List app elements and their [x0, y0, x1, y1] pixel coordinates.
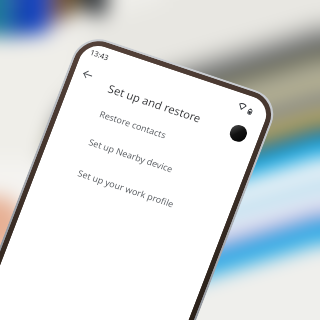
staticText: Set up your work profile — [73, 135, 180, 241]
staticText: Set up and restore — [102, 51, 208, 155]
staticText: 13:43 — [86, 41, 113, 68]
button[interactable]: Set up your work profile — [57, 109, 229, 278]
button[interactable]: Restore contacts — [78, 50, 251, 219]
button[interactable]: Back — [68, 55, 107, 94]
staticText: Set up Nearby device — [84, 108, 178, 201]
staticText: Restore contacts — [94, 86, 172, 162]
button[interactable]: Set up Nearby device — [68, 78, 240, 247]
